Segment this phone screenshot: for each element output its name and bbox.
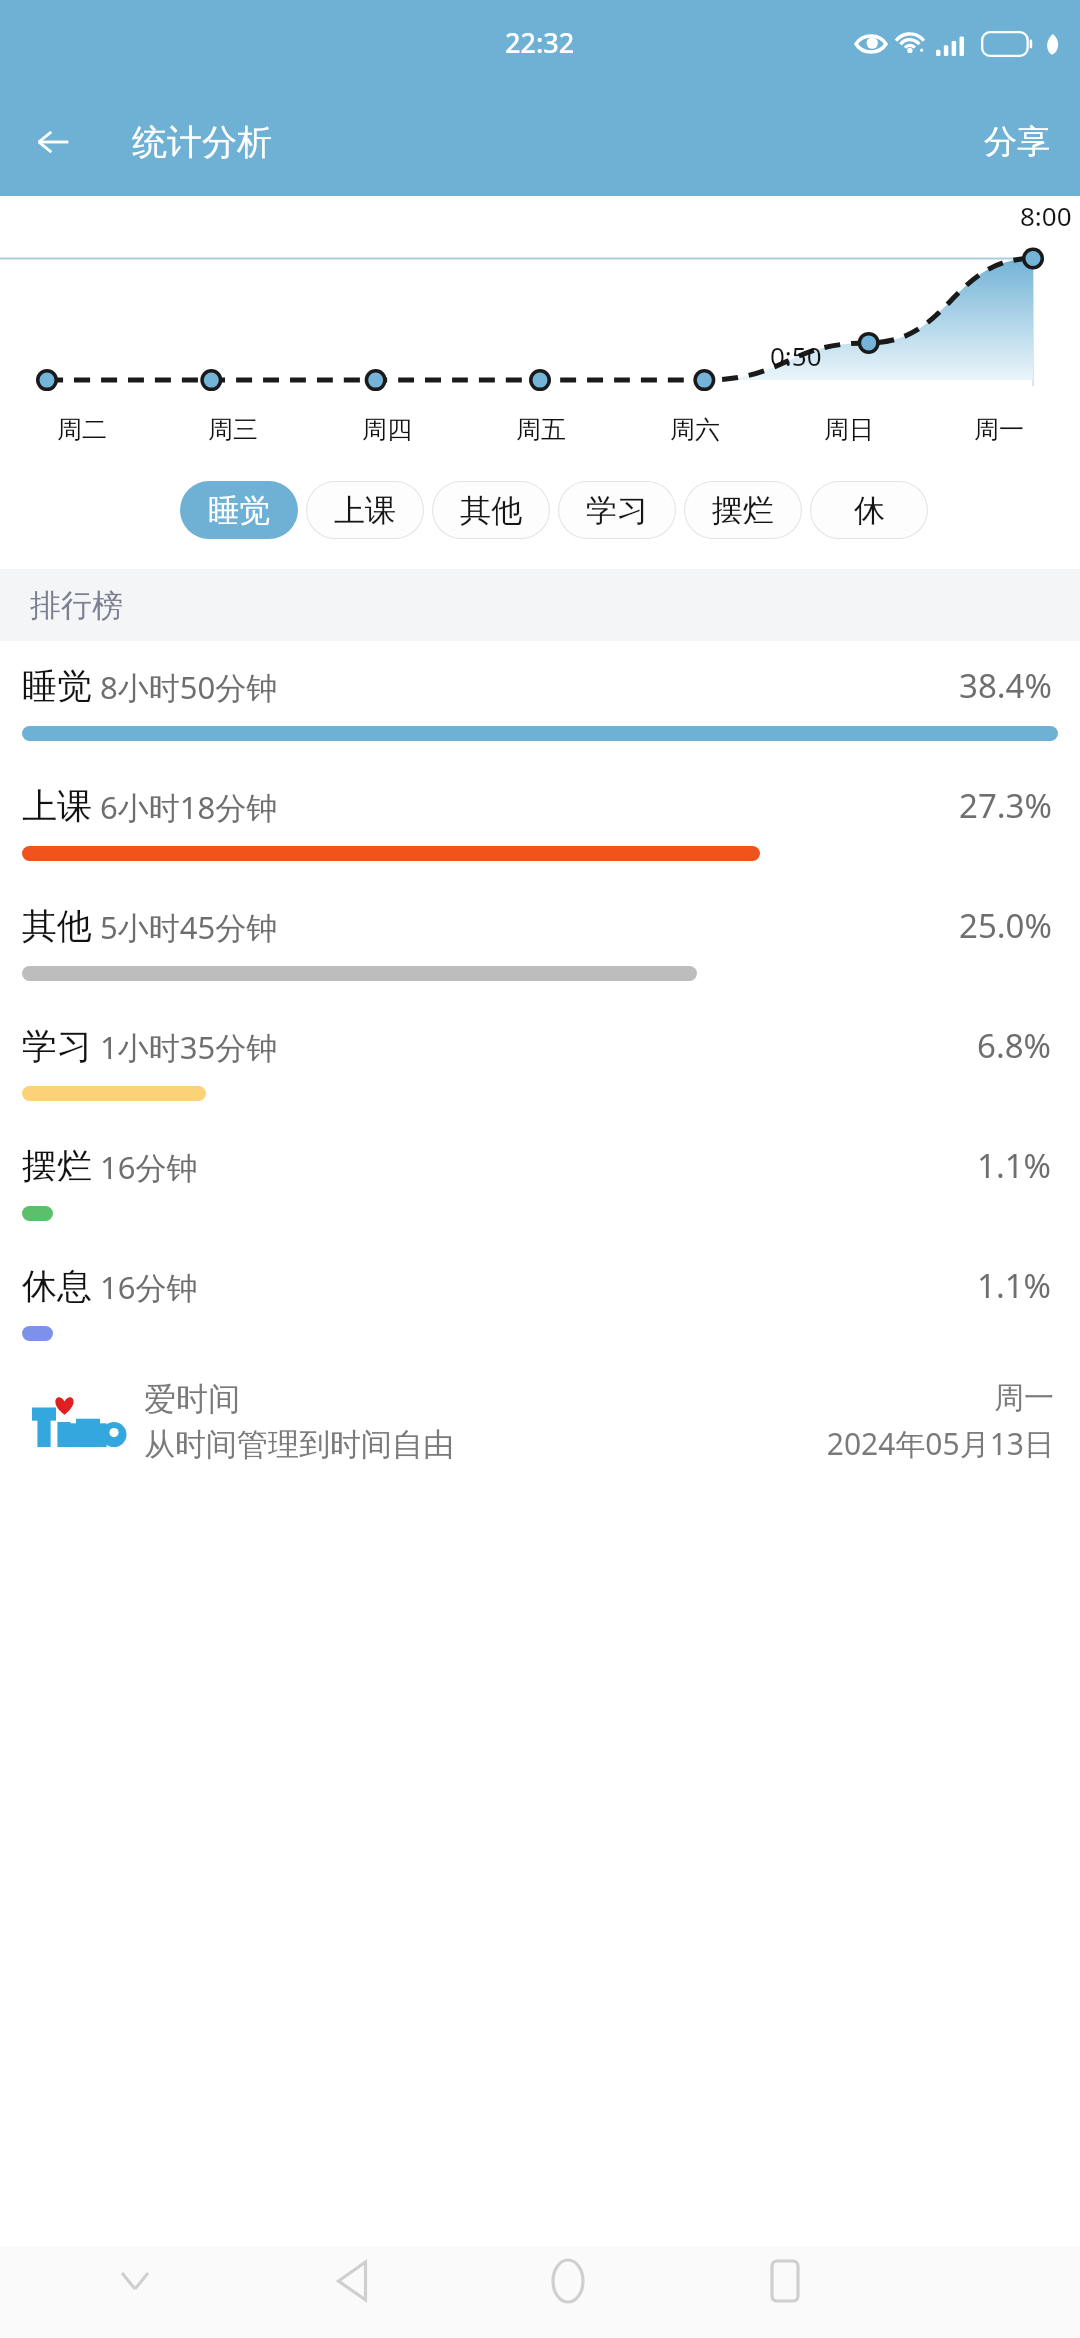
staticText: 38.4% bbox=[959, 663, 1052, 708]
staticText: 周三 bbox=[208, 414, 258, 445]
button[interactable]: 上课 bbox=[0, 761, 1080, 881]
staticText: 学习 bbox=[22, 1024, 92, 1068]
staticText: 上课 bbox=[22, 784, 92, 828]
staticText: 8:00 bbox=[1020, 198, 1072, 233]
button[interactable]: 分享 bbox=[968, 113, 1066, 171]
staticText: 0:50 bbox=[770, 338, 822, 373]
staticText: 16分钟 bbox=[100, 1266, 198, 1308]
button[interactable]: 睡觉 bbox=[180, 481, 298, 539]
staticText: 1.1% bbox=[977, 1143, 1052, 1188]
staticText: 休 bbox=[854, 491, 885, 530]
button[interactable]: 其他 bbox=[432, 481, 550, 539]
button[interactable]: 睡觉 bbox=[0, 641, 1080, 761]
staticText: 6小时18分钟 bbox=[100, 786, 278, 828]
staticText: 学习 bbox=[586, 491, 648, 530]
staticText: 休息 bbox=[22, 1264, 92, 1308]
staticText: 从时间管理到时间自由 bbox=[144, 1425, 454, 1464]
staticText: 周四 bbox=[362, 414, 412, 445]
button[interactable]: 摆烂 bbox=[684, 481, 802, 539]
button[interactable]: Home bbox=[533, 2246, 603, 2316]
button[interactable]: Back bbox=[22, 111, 84, 173]
staticText: 16分钟 bbox=[100, 1146, 198, 1188]
button[interactable]: 休 bbox=[810, 481, 928, 539]
staticText: 2024年05月13日 bbox=[826, 1423, 1054, 1464]
staticText: 周一 bbox=[994, 1379, 1054, 1417]
button[interactable]: 学习 bbox=[0, 1001, 1080, 1121]
staticText: 1.1% bbox=[977, 1263, 1052, 1308]
staticText: 周五 bbox=[516, 414, 566, 445]
staticText: 6.8% bbox=[977, 1023, 1052, 1068]
staticText: 上课 bbox=[334, 491, 396, 530]
staticText: 其他 bbox=[22, 904, 92, 948]
button[interactable]: 休息 bbox=[0, 1241, 1080, 1361]
button[interactable]: Recent apps bbox=[750, 2246, 820, 2316]
button[interactable]: Hide keyboard bbox=[100, 2246, 170, 2316]
staticText: 排行榜 bbox=[30, 586, 123, 625]
staticText: 其他 bbox=[460, 491, 522, 530]
button[interactable]: 学习 bbox=[558, 481, 676, 539]
staticText: 周二 bbox=[57, 414, 107, 445]
button[interactable]: 其他 bbox=[0, 881, 1080, 1001]
staticText: 27.3% bbox=[959, 783, 1052, 828]
staticText: 分享 bbox=[984, 121, 1050, 163]
button[interactable]: 摆烂 bbox=[0, 1121, 1080, 1241]
staticText: 统计分析 bbox=[132, 120, 272, 164]
staticText: 爱时间 bbox=[144, 1379, 240, 1419]
staticText: 睡觉 bbox=[22, 664, 92, 708]
staticText: 1小时35分钟 bbox=[100, 1026, 278, 1068]
staticText: 8小时50分钟 bbox=[100, 666, 278, 708]
staticText: 周日 bbox=[824, 414, 874, 445]
staticText: 睡觉 bbox=[208, 491, 270, 530]
button[interactable]: 上课 bbox=[306, 481, 424, 539]
staticText: 22:32 bbox=[505, 24, 575, 61]
staticText: 摆烂 bbox=[712, 491, 774, 530]
staticText: 摆烂 bbox=[22, 1144, 92, 1188]
staticText: 5小时45分钟 bbox=[100, 906, 278, 948]
staticText: 周一 bbox=[974, 414, 1024, 445]
button[interactable]: Back bbox=[317, 2246, 387, 2316]
staticText: 周六 bbox=[670, 414, 720, 445]
staticText: 25.0% bbox=[959, 903, 1052, 948]
